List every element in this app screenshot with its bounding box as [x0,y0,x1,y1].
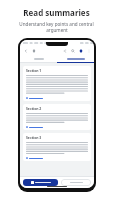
button[interactable]: Search [70,48,75,53]
button[interactable]: More options [86,48,91,53]
button[interactable] [23,179,58,186]
button[interactable] [26,157,43,159]
staticText: Section 3 [26,135,42,140]
button[interactable] [26,126,43,128]
button[interactable]: Share [62,48,67,53]
button[interactable] [61,179,91,186]
staticText: Section 1 [26,68,42,73]
button[interactable]: Document [31,48,36,53]
staticText: Section 2 [26,106,42,111]
button[interactable] [57,55,94,62]
staticText: argument [46,27,68,33]
staticText: Read summaries [23,7,90,18]
button[interactable]: Section 1 [23,66,91,101]
button[interactable]: Back [23,48,28,53]
staticText: Understand key points and central [19,21,94,27]
button[interactable] [20,55,57,62]
button[interactable] [26,97,43,99]
button[interactable]: Bookmark [78,48,83,53]
button[interactable]: Section 3 [23,133,91,161]
button[interactable]: Section 2 [23,104,91,130]
